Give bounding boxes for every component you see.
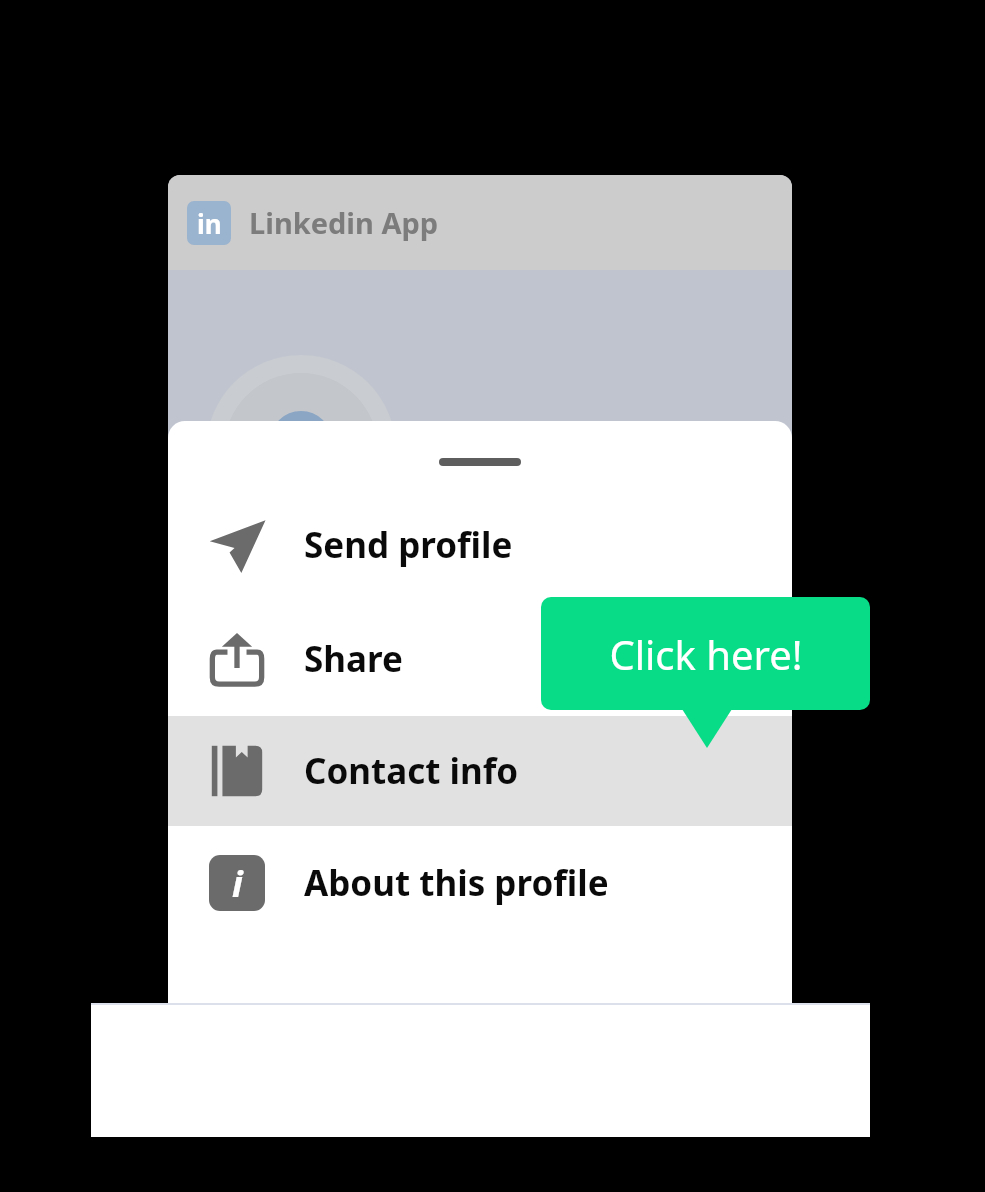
button[interactable]: Share (168, 601, 792, 716)
button[interactable]: Contact info (168, 716, 792, 826)
staticText: Linkedin App (249, 203, 439, 242)
staticText: Send profile (304, 521, 513, 569)
button[interactable]: i (168, 826, 792, 939)
staticText: Share (304, 635, 403, 683)
button[interactable]: Send profile (168, 488, 792, 601)
staticText: Contact info (304, 747, 519, 795)
staticText: Click here! (609, 627, 803, 681)
staticText: in (197, 206, 222, 241)
staticText: i (232, 859, 243, 908)
staticText: About this profile (304, 859, 609, 907)
